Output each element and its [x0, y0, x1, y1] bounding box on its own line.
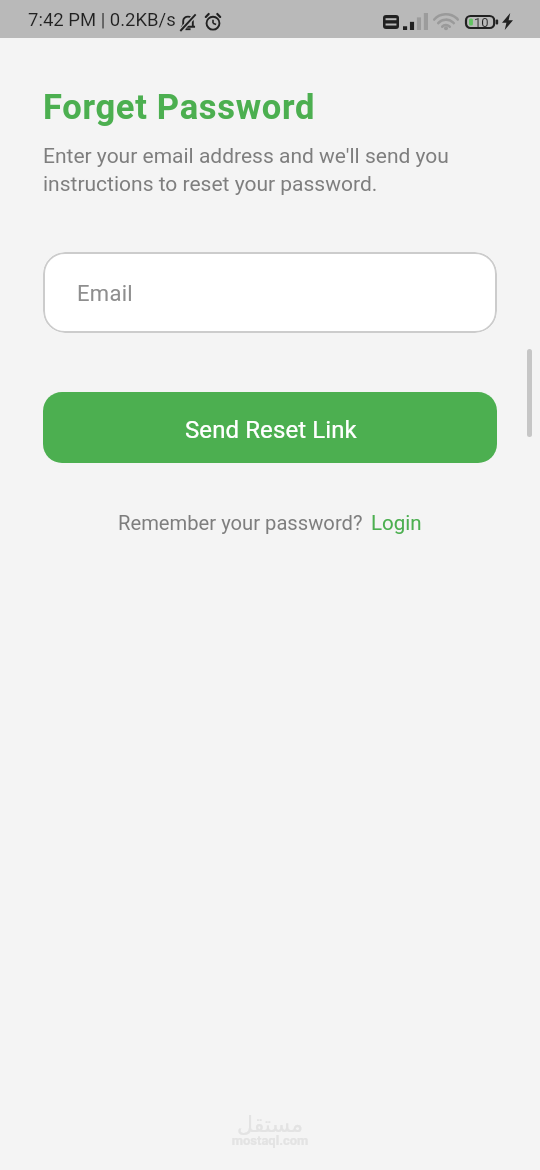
staticText: Enter your email address and we'll send …: [43, 144, 473, 196]
button[interactable]: Email: [43, 252, 497, 333]
staticText: Login: [371, 511, 422, 535]
staticText: 7:42 PM | 0.2KB/s: [28, 9, 176, 31]
staticText: Remember your password?: [118, 511, 363, 535]
button[interactable]: Login: [363, 511, 424, 535]
staticText: Send Reset Link: [185, 416, 357, 444]
button[interactable]: Send Reset Link: [43, 392, 497, 463]
staticText: 10: [474, 15, 489, 29]
staticText: Email: [77, 281, 133, 307]
staticText: mostaql.com: [0, 1133, 540, 1148]
staticText: Forget Password: [43, 87, 316, 127]
